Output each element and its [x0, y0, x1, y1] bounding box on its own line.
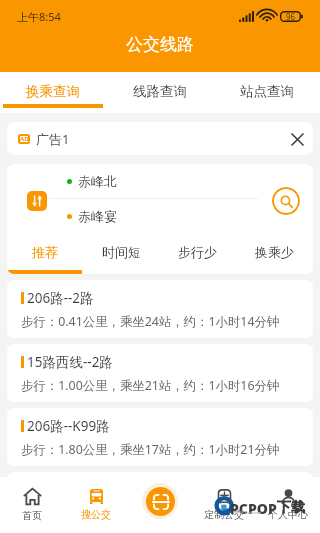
button[interactable]: 搜索	[272, 187, 300, 215]
button[interactable]: 搜公交	[64, 477, 128, 533]
button[interactable]: 定制公交	[192, 477, 256, 533]
button[interactable]: 交换起终点	[27, 191, 47, 211]
button[interactable]: 首页	[0, 477, 64, 533]
staticText: 96	[286, 11, 296, 22]
button[interactable]: 时间短	[83, 238, 159, 274]
button[interactable]: 站点查询	[213, 72, 320, 113]
staticText: 搜公交	[81, 508, 111, 521]
staticText: 下载	[277, 499, 305, 517]
button[interactable]: 换乘少	[236, 238, 313, 274]
button[interactable]: 步行少	[159, 238, 236, 274]
staticText: 公交线路	[126, 34, 194, 55]
staticText: 推荐	[32, 244, 58, 260]
staticText: 个人中心	[268, 508, 308, 521]
button[interactable]: 15路西线--2路	[7, 344, 313, 402]
staticText: 步行：0.41公里，乘坐24站，约：1小时14分钟	[21, 313, 280, 330]
staticText: 换乘少	[255, 244, 294, 260]
button[interactable]: 206路--2路	[7, 280, 313, 338]
button[interactable]	[7, 472, 313, 530]
button[interactable]: 推荐	[7, 238, 83, 274]
staticText: 广告1	[36, 130, 70, 148]
button[interactable]: 线路查询	[106, 72, 213, 113]
button[interactable]: 扫一扫	[142, 483, 178, 519]
staticText: AD	[20, 135, 29, 143]
button[interactable]: 个人中心	[256, 477, 320, 533]
staticText: 步行：1.00公里，乘坐21站，约：1小时16分钟	[21, 377, 280, 394]
staticText: 206路--2路	[27, 289, 94, 307]
staticText: 步行：1.80公里，乘坐17站，约：1小时21分钟	[21, 441, 280, 458]
staticText: 换乘查询	[26, 83, 80, 100]
staticText: 赤峰宴	[78, 208, 117, 224]
button[interactable]: 206路--K99路	[7, 408, 313, 466]
staticText: 定制公交	[204, 508, 244, 521]
button[interactable]: 换乘查询	[0, 72, 106, 113]
staticText: 赤峰北	[78, 173, 117, 189]
staticText: 上午8:54	[17, 9, 61, 24]
button[interactable]: AD	[7, 122, 313, 155]
staticText: 站点查询	[240, 83, 294, 100]
staticText: 15路西线--2路	[27, 353, 113, 371]
staticText: PCPOP	[230, 499, 277, 518]
staticText: 首页	[22, 509, 42, 522]
staticText: 步行少	[178, 244, 217, 260]
button[interactable]: 关闭广告	[284, 126, 310, 152]
staticText: 206路--K99路	[27, 417, 110, 435]
staticText: 时间短	[102, 244, 141, 260]
staticText: 线路查询	[133, 83, 187, 100]
staticText: PCPOP Download	[233, 510, 261, 515]
